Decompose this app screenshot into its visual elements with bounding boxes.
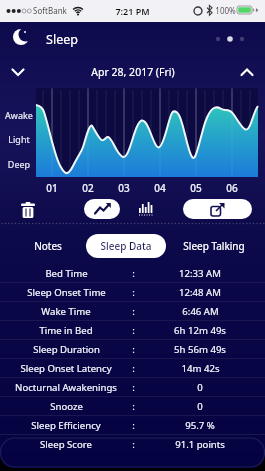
staticText: SoftBank — [33, 5, 67, 16]
button[interactable]: Wake Time — [0, 302, 265, 320]
staticText: Sleep Data — [100, 239, 152, 253]
staticText: 03 — [114, 181, 134, 195]
staticText: Snooze — [50, 400, 83, 413]
staticText: Deep — [3, 158, 35, 170]
staticText: 0 — [197, 381, 203, 394]
button[interactable]: Sleep Onset Time — [0, 283, 265, 301]
button[interactable] — [84, 199, 120, 219]
staticText: Notes — [34, 239, 62, 253]
staticText: : — [132, 400, 135, 413]
button[interactable]: Bed Time — [0, 264, 265, 282]
button[interactable]: Nocturnal Awakenings — [0, 378, 265, 396]
staticText: 5h 56m 49s — [174, 343, 226, 356]
staticText: 6:46 AM — [182, 305, 219, 318]
staticText: Awake — [3, 109, 35, 121]
button[interactable]: Sleep Efficiency — [0, 416, 265, 434]
staticText: Sleep Onset Latency — [20, 362, 112, 375]
staticText: Sleep Efficiency — [31, 419, 101, 432]
staticText: : — [132, 419, 135, 432]
staticText: : — [132, 381, 135, 394]
staticText: : — [132, 343, 135, 356]
staticText: : — [132, 267, 135, 280]
button[interactable]: Time in Bed — [0, 321, 265, 339]
staticText: 95.7 % — [185, 419, 215, 432]
button[interactable]: Sleep Data — [86, 234, 166, 258]
button[interactable] — [16, 198, 40, 222]
staticText: Sleep Onset Time — [27, 286, 106, 299]
staticText: 12:33 AM — [179, 267, 221, 280]
staticText: 12:48 AM — [179, 286, 221, 299]
button[interactable] — [4, 58, 32, 86]
staticText: 02 — [78, 181, 98, 195]
staticText: : — [132, 362, 135, 375]
staticText: Sleep — [46, 31, 78, 48]
staticText: Apr 28, 2017 (Fri) — [91, 65, 175, 79]
staticText: 7:21 PM — [115, 5, 150, 17]
button[interactable] — [233, 58, 261, 86]
button[interactable]: Snooze — [0, 397, 265, 415]
button[interactable]: Notes — [24, 234, 72, 258]
staticText: 14m 42s — [181, 362, 220, 375]
staticText: : — [132, 438, 135, 451]
staticText: 05 — [186, 181, 206, 195]
staticText: Time in Bed — [39, 324, 93, 337]
staticText: Sleep Score — [40, 438, 92, 451]
staticText: Wake Time — [41, 305, 91, 318]
staticText: 0 — [197, 400, 203, 413]
staticText: 06 — [222, 181, 242, 195]
staticText: 6h 12m 49s — [174, 324, 226, 337]
staticText: 100% — [215, 5, 236, 16]
button[interactable]: Sleep Talking — [172, 234, 256, 258]
staticText: : — [132, 305, 135, 318]
button[interactable]: Sleep Score — [0, 435, 265, 453]
staticText: Sleep Duration — [33, 343, 100, 356]
staticText: 91.1 points — [175, 438, 225, 451]
button[interactable]: Sleep Duration — [0, 340, 265, 358]
button[interactable]: Sleep Onset Latency — [0, 359, 265, 377]
button[interactable] — [183, 199, 252, 219]
staticText: Bed Time — [45, 267, 88, 280]
staticText: Light — [3, 133, 35, 145]
staticText: : — [132, 286, 135, 299]
button[interactable] — [135, 198, 157, 220]
staticText: Nocturnal Awakenings — [15, 381, 117, 394]
staticText: 01 — [42, 181, 62, 195]
staticText: 04 — [150, 181, 170, 195]
staticText: : — [132, 324, 135, 337]
staticText: Sleep Talking — [183, 239, 245, 253]
